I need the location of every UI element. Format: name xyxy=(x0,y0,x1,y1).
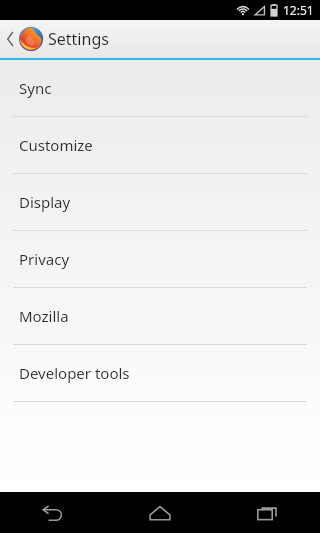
staticText: Developer tools xyxy=(19,363,130,383)
button[interactable]: Sync xyxy=(0,60,320,116)
button[interactable]: Display xyxy=(0,174,320,230)
button[interactable]: Recent apps xyxy=(213,492,320,533)
staticText: Mozilla xyxy=(19,306,69,326)
staticText: Settings xyxy=(48,28,109,50)
staticText: Sync xyxy=(19,78,52,98)
button[interactable]: Mozilla xyxy=(0,288,320,344)
button[interactable]: Navigate up xyxy=(0,20,320,58)
button[interactable]: Home xyxy=(106,492,213,533)
staticText: 12:51 xyxy=(283,2,314,18)
button[interactable]: Back xyxy=(0,492,106,533)
button[interactable]: Privacy xyxy=(0,231,320,287)
staticText: Customize xyxy=(19,135,93,155)
staticText: Privacy xyxy=(19,249,70,269)
staticText: Display xyxy=(19,192,71,212)
button[interactable]: Customize xyxy=(0,117,320,173)
button[interactable]: Developer tools xyxy=(0,345,320,401)
